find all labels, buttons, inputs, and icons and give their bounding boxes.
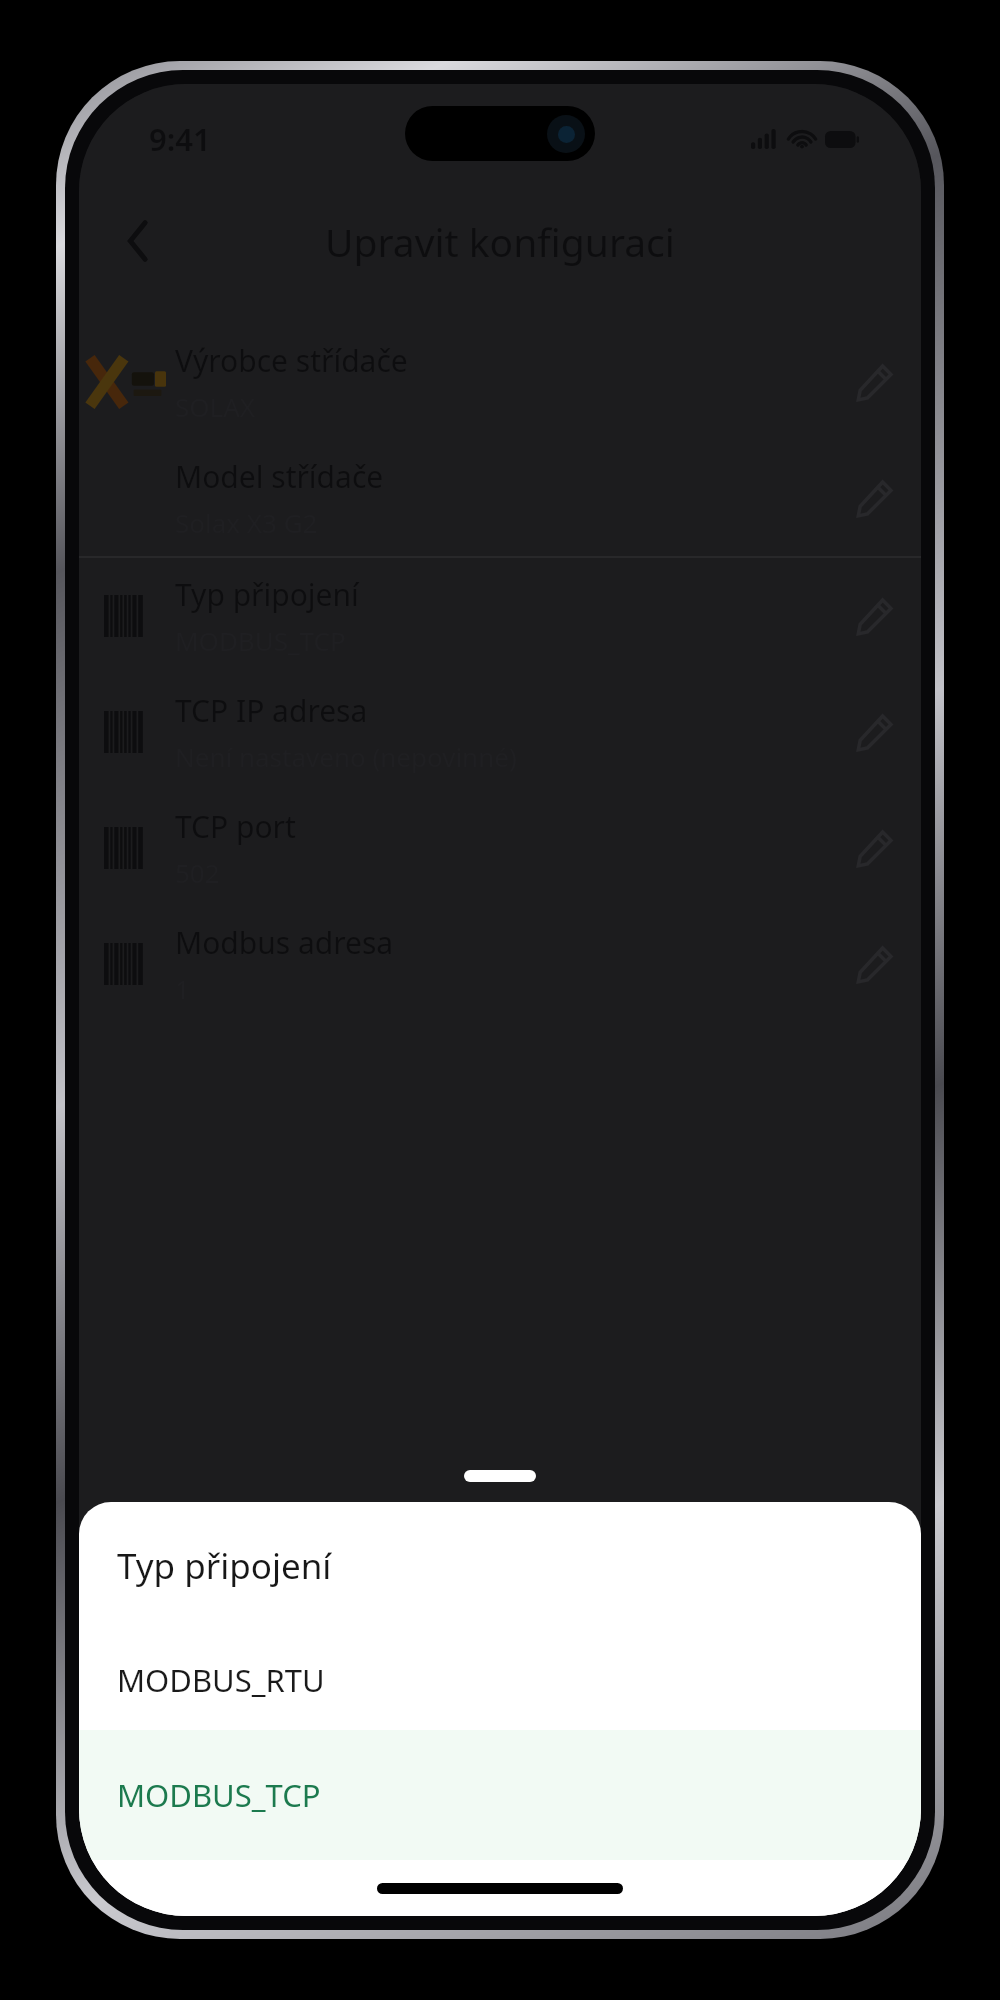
button[interactable]: Back bbox=[107, 210, 169, 272]
staticText: TCP IP adresa bbox=[175, 690, 368, 731]
staticText: TCP port bbox=[175, 806, 296, 847]
button[interactable]: Výrobce střídače bbox=[79, 324, 921, 440]
staticText: Upravit konfiguraci bbox=[325, 215, 675, 268]
staticText: Model střídače bbox=[175, 456, 384, 497]
staticText: Modbus adresa bbox=[175, 922, 394, 963]
button[interactable]: MODBUS_TCP bbox=[79, 1730, 921, 1860]
staticText: MODBUS_RTU bbox=[117, 1659, 325, 1701]
staticText: Výrobce střídače bbox=[175, 340, 408, 381]
staticText: Typ připojení bbox=[175, 574, 359, 615]
staticText: MODBUS_TCP bbox=[117, 1774, 321, 1816]
staticText: Typ připojení bbox=[117, 1542, 332, 1590]
staticText: 9:41 bbox=[149, 118, 211, 160]
button[interactable]: MODBUS_RTU bbox=[79, 1630, 921, 1730]
